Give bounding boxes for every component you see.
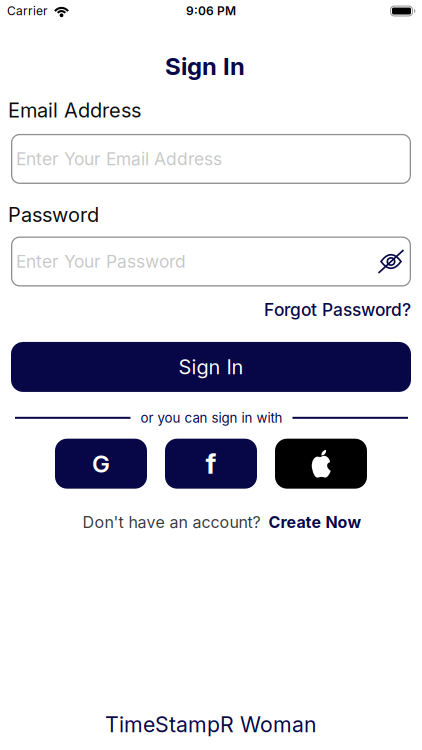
button[interactable]: Sign in with Apple [275, 439, 367, 489]
button[interactable]: Forgot Password? [264, 299, 411, 320]
button[interactable]: Sign in with Facebook [165, 439, 257, 489]
staticText: TimeStampR Woman [105, 712, 317, 737]
staticText: G [92, 449, 110, 478]
button[interactable]: Show password [376, 249, 406, 273]
staticText: Password [8, 203, 99, 226]
staticText: Sign In [178, 355, 243, 379]
staticText: Carrier [7, 4, 48, 18]
staticText: Forgot Password? [264, 299, 411, 320]
button[interactable]: Sign In [11, 342, 411, 392]
staticText: Enter Your Email Address [16, 149, 222, 169]
button[interactable]: Sign in with Google [55, 439, 147, 489]
button[interactable]: Create Now [268, 513, 361, 532]
staticText: Don't have an account? [82, 513, 260, 532]
staticText: 9:06 PM [186, 4, 236, 18]
staticText: or you can sign in with [140, 410, 282, 426]
staticText: Create Now [268, 513, 361, 532]
staticText: Sign In [165, 52, 245, 80]
staticText: Email Address [8, 98, 141, 122]
staticText: Enter Your Password [16, 251, 186, 272]
staticText: f [205, 447, 216, 480]
